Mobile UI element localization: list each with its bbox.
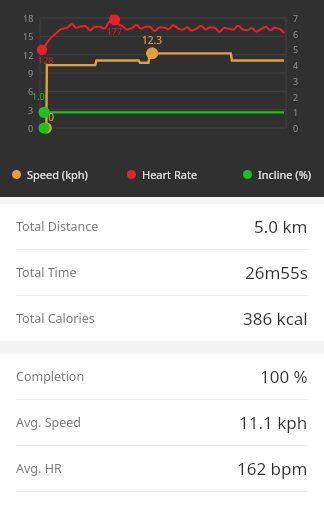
button[interactable]: Speed (kph) <box>6 167 110 182</box>
button[interactable]: Avg. Speed <box>0 400 324 445</box>
staticText: Speed (kph) <box>27 167 88 182</box>
staticText: Avg. Speed <box>16 414 81 431</box>
button[interactable]: Incline (%) <box>214 167 318 182</box>
staticText: 386 kcal <box>243 307 308 330</box>
button[interactable]: Completion <box>0 354 324 399</box>
staticText: 162 bpm <box>237 457 308 480</box>
staticText: Avg. HR <box>16 460 62 477</box>
staticText: Incline (%) <box>258 167 312 182</box>
button[interactable]: Total Time <box>0 250 324 295</box>
staticText: 100 % <box>260 365 308 388</box>
staticText: Total Calories <box>16 310 95 327</box>
staticText: Completion <box>16 368 85 385</box>
staticText: Heart Rate <box>142 167 198 182</box>
staticText: 5.0 km <box>254 215 308 238</box>
staticText: Total Time <box>16 264 77 281</box>
button[interactable]: Total Calories <box>0 296 324 341</box>
staticText: Total Distance <box>16 218 99 235</box>
staticText: 26m55s <box>245 261 308 284</box>
staticText: 11.1 kph <box>239 411 308 434</box>
button[interactable]: Heart Rate <box>110 167 214 182</box>
button[interactable]: Total Distance <box>0 204 324 249</box>
button[interactable]: Avg. HR <box>0 446 324 491</box>
